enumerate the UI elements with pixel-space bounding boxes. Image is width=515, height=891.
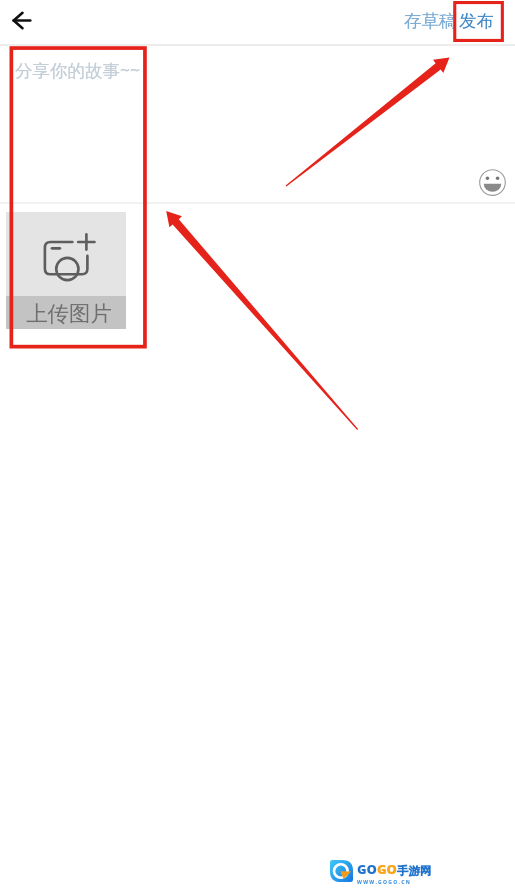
staticText: 分享你的故事~~ [15, 58, 141, 82]
staticText: 手游网 [397, 864, 432, 878]
button[interactable]: 存草稿 [401, 1, 458, 41]
button[interactable]: 发布 [458, 1, 505, 41]
button[interactable]: 上传图片 [6, 212, 126, 329]
staticText: 发布 [459, 10, 494, 32]
staticText: 上传图片 [26, 300, 112, 327]
staticText: GO [377, 860, 397, 878]
button[interactable]: Back [3, 0, 43, 40]
button[interactable]: Emoji [478, 168, 507, 197]
staticText: W W W . G O G O . C N [357, 879, 410, 886]
staticText: 存草稿 [404, 10, 457, 32]
staticText: GO [357, 860, 377, 878]
